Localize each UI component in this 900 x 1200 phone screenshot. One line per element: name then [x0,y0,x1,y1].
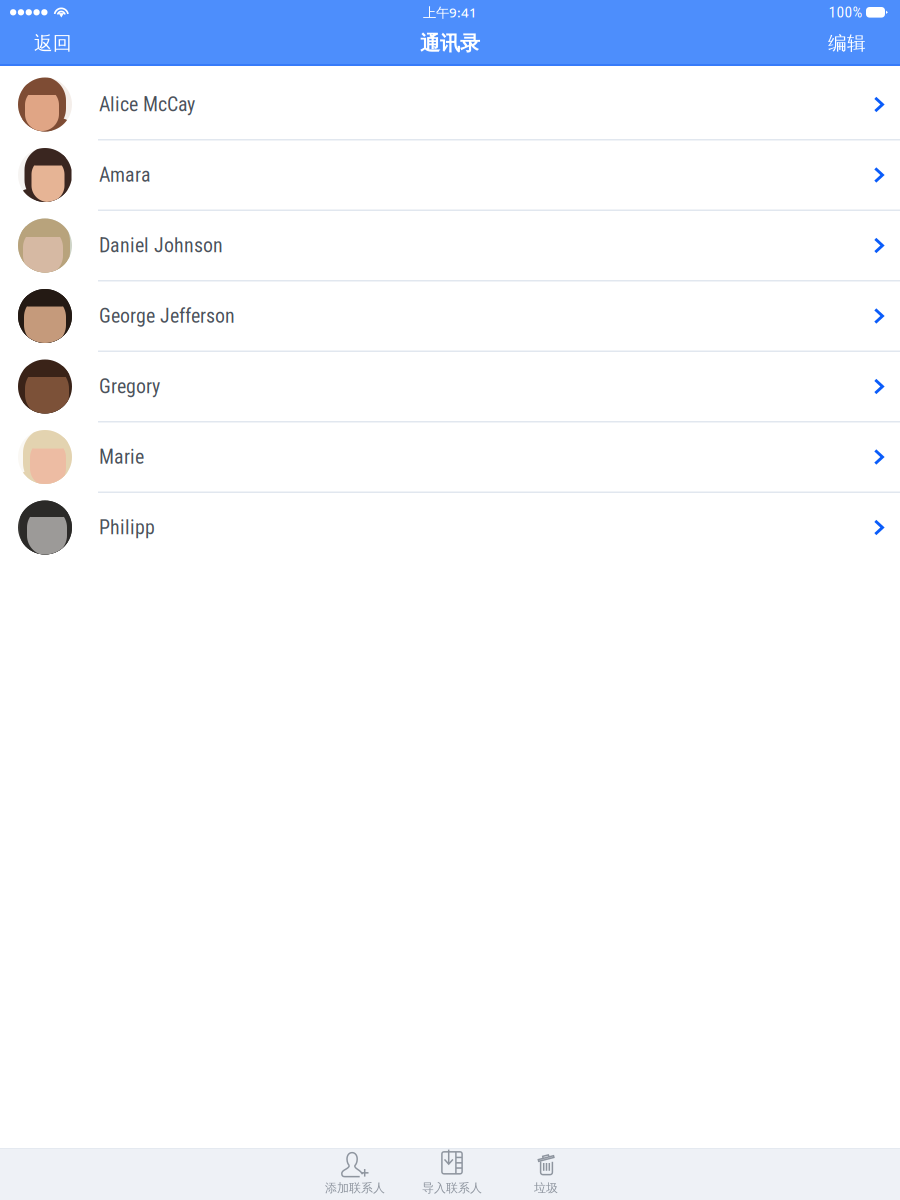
button[interactable]: Amara [0,140,900,211]
button[interactable]: Gregory [0,352,900,422]
button[interactable]: Philipp [0,493,900,562]
staticText: 导入联系人 [422,1181,482,1195]
staticText: Gregory [99,375,160,398]
staticText: 上午9:41 [423,3,477,21]
staticText: 垃圾 [534,1181,558,1195]
staticText: 通讯录 [420,31,480,56]
staticText: Amara [99,163,151,187]
staticText: 添加联系人 [325,1181,385,1195]
staticText: 100% [828,3,862,21]
staticText: Alice McCay [99,93,195,116]
button[interactable]: George Jefferson [0,281,900,352]
staticText: Philipp [99,516,155,539]
button[interactable]: Daniel Johnson [0,211,900,281]
staticText: George Jefferson [99,304,235,328]
staticText: Daniel Johnson [99,234,223,257]
button[interactable]: 返回 [11,24,84,63]
button[interactable]: Import contacts [414,1148,490,1200]
button[interactable]: Alice McCay [0,70,900,140]
staticText: 返回 [34,32,72,55]
button[interactable]: Marie [0,422,900,493]
button[interactable]: Trash [526,1148,566,1200]
staticText: Marie [99,445,144,469]
staticText: 编辑 [828,32,866,55]
button[interactable]: Add contact [317,1148,393,1200]
button[interactable]: 编辑 [816,24,889,63]
